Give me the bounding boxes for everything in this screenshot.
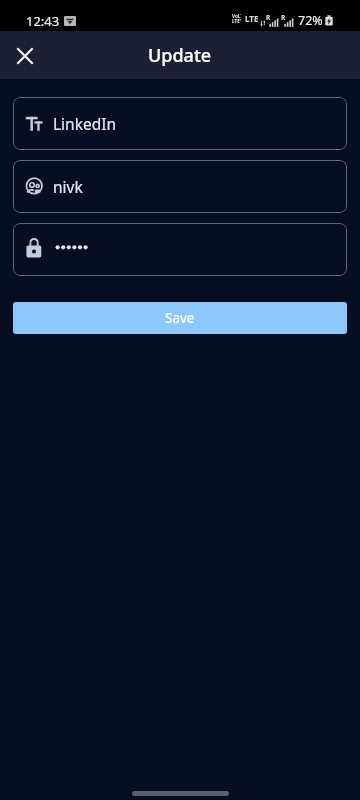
button[interactable]: Close [8,39,41,72]
staticText: LTE [245,13,259,24]
button[interactable]: Title [13,97,347,150]
staticText: nivk [53,176,83,197]
staticText: Update [148,43,212,68]
staticText: Save [165,309,195,327]
staticText: 12:43 [26,12,60,30]
staticText: R [266,13,271,22]
staticText: VoLTE [232,13,241,19]
button[interactable]: Password [13,223,347,276]
button[interactable]: Username [13,160,347,213]
staticText: R [281,13,286,22]
staticText: LinkedIn [53,113,117,134]
button[interactable]: Save [13,302,347,334]
staticText: LTE1 [232,18,241,24]
staticText: 72% [298,12,323,29]
